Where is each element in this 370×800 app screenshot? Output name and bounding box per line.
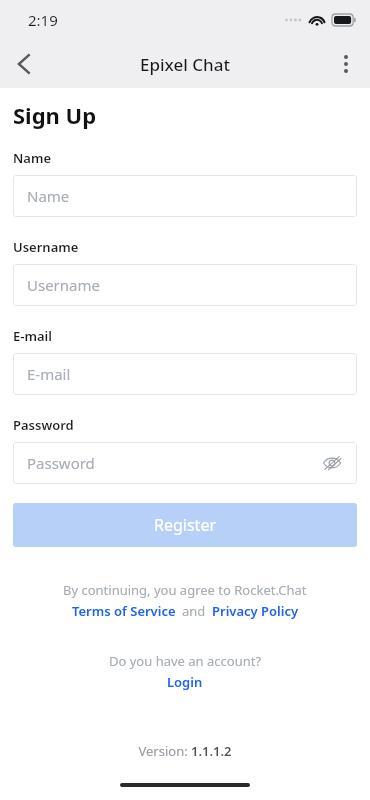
- button[interactable]: More options: [322, 40, 370, 88]
- button[interactable]: E-mail: [13, 353, 357, 395]
- button[interactable]: Terms of Service: [72, 602, 176, 620]
- staticText: Epixel Chat: [140, 53, 230, 76]
- staticText: Username: [13, 238, 79, 256]
- staticText: Sign Up: [13, 100, 97, 130]
- staticText: Name: [27, 186, 70, 206]
- staticText: Password: [27, 453, 95, 473]
- staticText: E-mail: [13, 327, 52, 345]
- button[interactable]: Register: [13, 503, 357, 547]
- button[interactable]: Name: [13, 175, 357, 217]
- staticText: By continuing, you agree to Rocket.Chat: [63, 581, 307, 599]
- staticText: Privacy Policy: [212, 602, 299, 620]
- staticText: Terms of Service: [72, 602, 176, 620]
- staticText: E-mail: [27, 364, 71, 384]
- staticText: Username: [27, 275, 100, 295]
- staticText: Password: [13, 416, 74, 434]
- button[interactable]: Login: [167, 673, 203, 691]
- staticText: 2:19: [28, 10, 58, 30]
- staticText: Do you have an account?: [109, 652, 262, 670]
- button[interactable]: Password: [13, 442, 357, 484]
- button[interactable]: Back: [0, 40, 48, 88]
- staticText: and: [182, 602, 206, 620]
- staticText: Login: [167, 673, 203, 691]
- staticText: Name: [13, 149, 51, 167]
- button[interactable]: Privacy Policy: [212, 602, 299, 620]
- staticText: Register: [154, 514, 217, 536]
- button[interactable]: Username: [13, 264, 357, 306]
- staticText: Version: 1.1.1.2: [138, 742, 232, 760]
- button[interactable]: Show password: [319, 450, 345, 476]
